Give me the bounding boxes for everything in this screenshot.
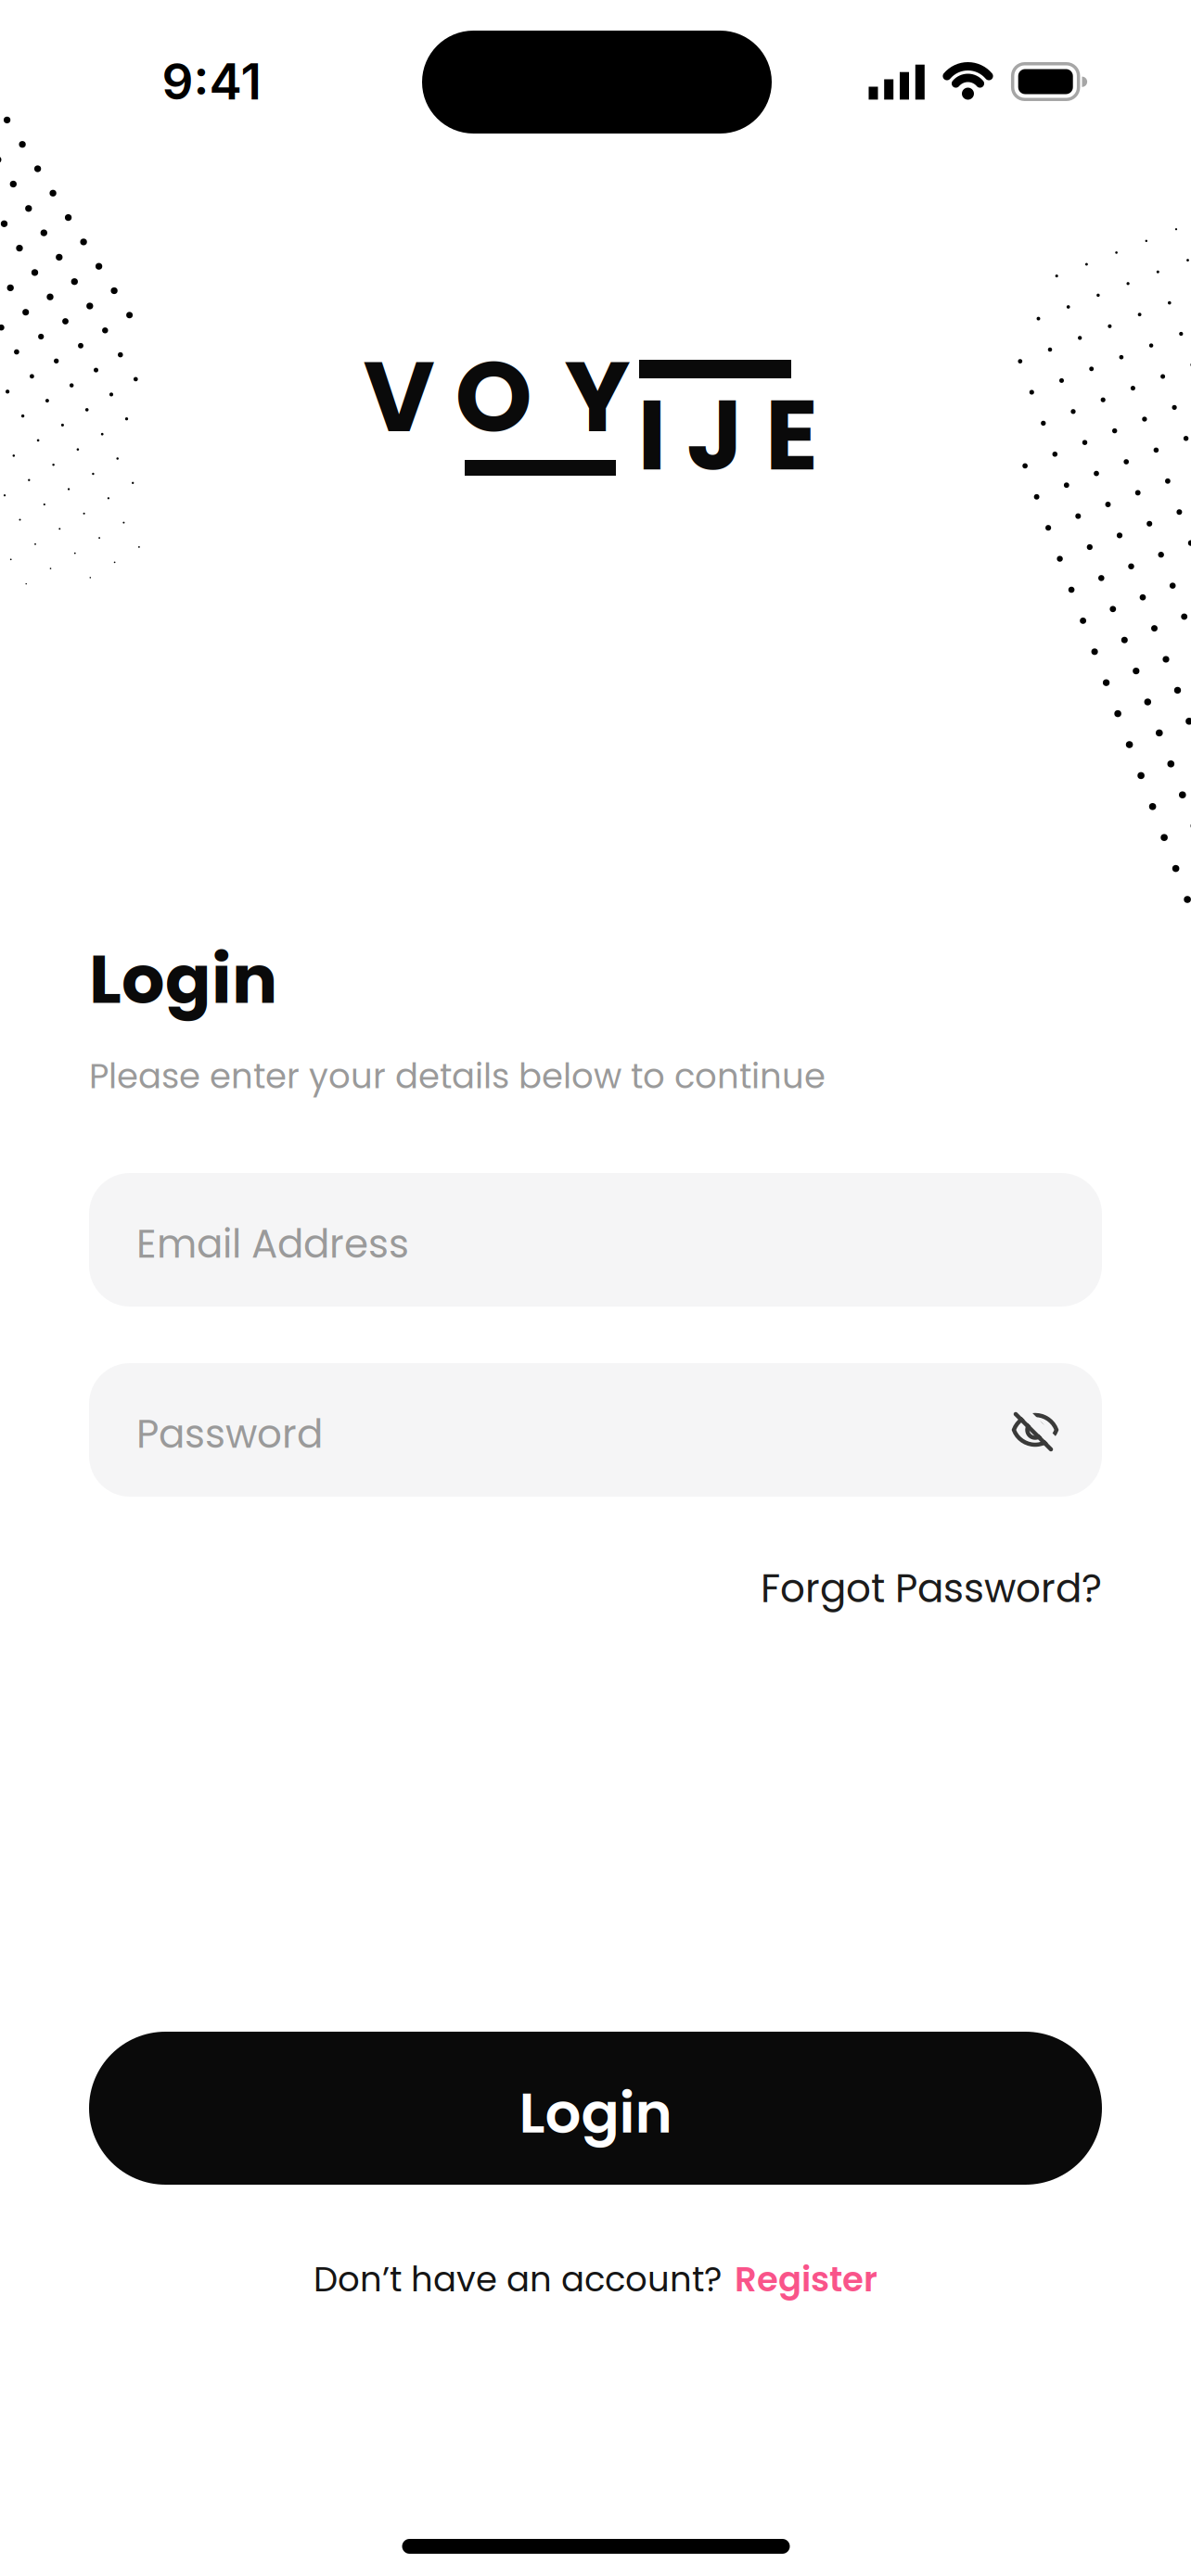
button[interactable]: Forgot Password?: [761, 1561, 1102, 1616]
staticText: Please enter your details below to conti…: [89, 1052, 826, 1100]
staticText: Password: [136, 1407, 323, 1461]
button[interactable]: Show password: [993, 1388, 1077, 1472]
staticText: J: [686, 366, 743, 504]
staticText: O: [455, 328, 532, 466]
button[interactable]: Email Address: [89, 1173, 1102, 1307]
button[interactable]: Password: [89, 1363, 1102, 1497]
staticText: Login: [519, 2073, 672, 2152]
button[interactable]: Login: [89, 2032, 1102, 2185]
staticText: Don’t have an account?: [314, 2255, 722, 2303]
staticText: Email Address: [136, 1217, 409, 1271]
staticText: E: [765, 366, 818, 504]
button[interactable]: Register: [735, 2255, 877, 2303]
staticText: Forgot Password?: [761, 1561, 1102, 1616]
staticText: Y: [564, 328, 630, 466]
staticText: V: [363, 328, 435, 466]
staticText: Register: [735, 2255, 877, 2303]
staticText: Login: [89, 932, 277, 1027]
staticText: I: [637, 366, 666, 504]
staticText: 9:41: [162, 52, 261, 111]
